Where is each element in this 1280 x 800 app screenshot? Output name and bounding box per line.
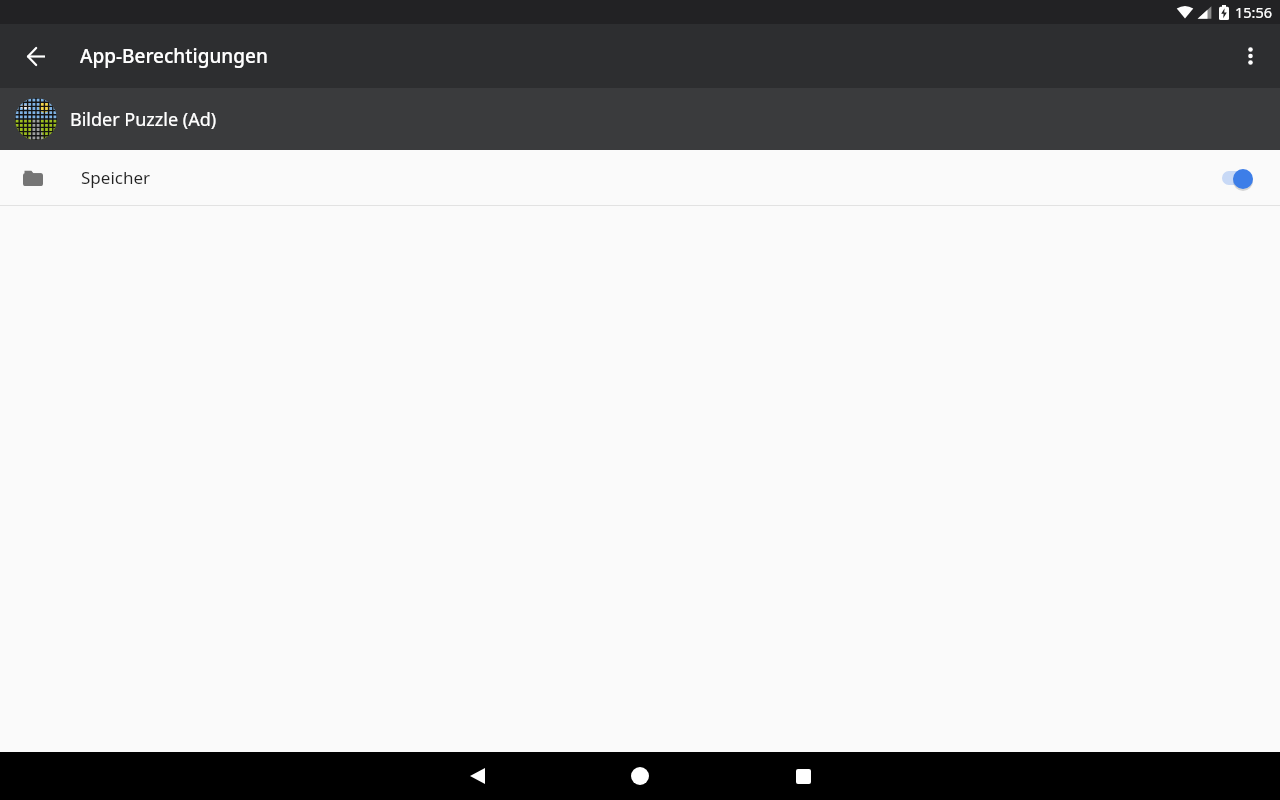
button[interactable] bbox=[616, 752, 664, 800]
button[interactable] bbox=[1226, 32, 1274, 80]
button[interactable]: Bilder Puzzle (Ad) bbox=[0, 88, 1280, 150]
staticText: Speicher bbox=[81, 166, 151, 189]
button[interactable] bbox=[8, 28, 64, 84]
button[interactable]: Speicher bbox=[0, 150, 1280, 205]
staticText: App-Berechtigungen bbox=[80, 43, 268, 69]
staticText: 15:56 bbox=[1235, 2, 1273, 22]
button[interactable] bbox=[779, 752, 827, 800]
staticText: Bilder Puzzle (Ad) bbox=[70, 107, 217, 132]
button[interactable] bbox=[453, 752, 501, 800]
button[interactable] bbox=[1222, 163, 1262, 193]
